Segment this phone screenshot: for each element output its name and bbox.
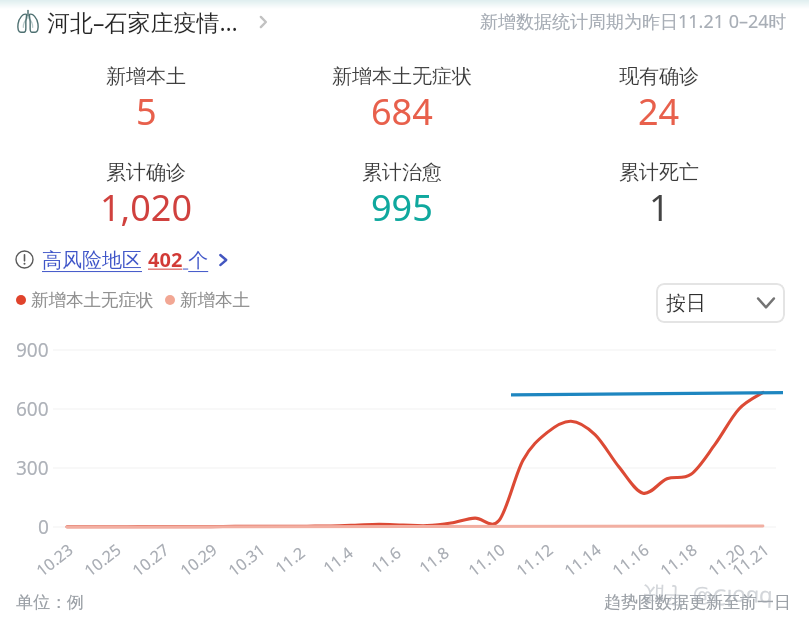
staticText: 11.2 <box>271 541 309 578</box>
staticText: 按日 <box>666 291 706 316</box>
staticText: 10.29 <box>176 539 221 581</box>
staticText: 11.20 <box>704 539 749 581</box>
staticText: 0 <box>38 514 49 540</box>
button[interactable]: 按日 选择统计周期 <box>656 283 785 323</box>
staticText: 300 <box>16 455 49 481</box>
staticText: 新增本土无症状 <box>31 289 154 311</box>
button[interactable]: 新增本土无症状 <box>16 289 154 311</box>
staticText: 累计治愈 <box>362 160 442 185</box>
staticText: 11.14 <box>560 539 605 581</box>
staticText: 10.27 <box>128 539 173 581</box>
staticText: 24 <box>638 87 680 136</box>
staticText: 现有确诊 <box>619 64 699 89</box>
button[interactable]: 新增本土 <box>165 289 250 311</box>
staticText: 402 <box>148 246 183 273</box>
staticText: 个 <box>183 246 209 273</box>
staticText: 1,020 <box>100 183 193 232</box>
staticText: 11.10 <box>464 539 509 581</box>
button[interactable]: 河北–石家庄疫情详情 <box>16 6 272 37</box>
staticText: 11.16 <box>608 539 653 581</box>
staticText: 新增数据统计周期为昨日11.21 0–24时 <box>480 9 787 34</box>
staticText: 11.6 <box>367 541 405 578</box>
staticText: 10.23 <box>32 539 77 581</box>
staticText: 单位：例 <box>16 592 84 613</box>
staticText: 累计死亡 <box>619 160 699 185</box>
staticText: 新增本土 <box>106 64 186 89</box>
staticText: 10.25 <box>80 539 125 581</box>
staticText: 11.21 <box>728 539 773 581</box>
staticText: 600 <box>16 396 49 422</box>
staticText: 900 <box>16 337 49 363</box>
staticText: 995 <box>371 183 433 232</box>
staticText: 11.4 <box>319 541 357 578</box>
staticText: 趋势图数据更新至前一日 <box>604 592 791 613</box>
button[interactable]: 高风险地区 402 个 <box>13 244 234 275</box>
staticText: 11.12 <box>512 539 557 581</box>
staticText: 新增本土无症状 <box>332 64 472 89</box>
staticText: 知乎 @Cloud <box>642 581 773 615</box>
staticText: 5 <box>136 87 157 136</box>
staticText: 河北–石家庄疫情… <box>47 6 238 37</box>
staticText: 1 <box>649 183 670 232</box>
staticText: 10.31 <box>224 539 269 581</box>
staticText: 11.18 <box>656 539 701 581</box>
staticText: 684 <box>371 87 433 136</box>
staticText: 高风险地区 <box>42 246 148 273</box>
staticText: 11.8 <box>415 541 453 578</box>
staticText: 累计确诊 <box>106 160 186 185</box>
staticText: 新增本土 <box>180 289 250 311</box>
